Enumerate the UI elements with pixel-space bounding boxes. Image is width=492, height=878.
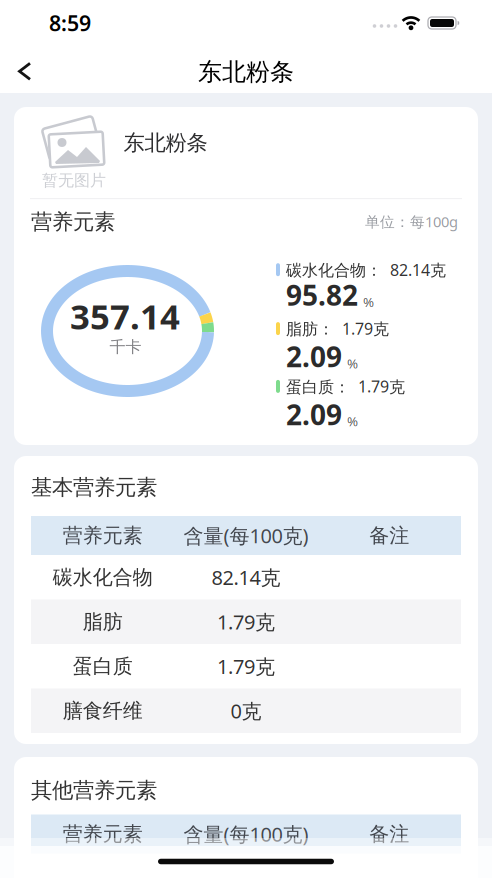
staticText: 含量(每100克)	[183, 821, 308, 847]
staticText: %	[363, 293, 374, 311]
staticText: %	[347, 354, 358, 372]
staticText: 千卡	[109, 337, 141, 357]
staticText: 82.14克	[211, 564, 280, 591]
staticText: 2.09	[286, 338, 342, 375]
staticText: 1.79克	[217, 653, 275, 680]
staticText: 单位：每100g	[365, 212, 458, 231]
staticText: 脂肪	[83, 609, 123, 634]
staticText: 357.14	[70, 293, 180, 339]
staticText: 营养元素	[63, 822, 143, 846]
button[interactable]: Back	[3, 49, 47, 93]
staticText: 蛋白质： 1.79克	[286, 376, 405, 397]
staticText: 95.82	[286, 276, 358, 314]
staticText: %	[347, 412, 358, 430]
staticText: 1.79克	[217, 608, 275, 635]
staticText: 2.09	[286, 396, 342, 433]
staticText: 备注	[369, 822, 409, 846]
staticText: 营养元素	[31, 209, 115, 235]
staticText: 含量(每100克)	[183, 522, 308, 549]
staticText: 其他营养元素	[31, 777, 157, 804]
staticText: 东北粉条	[198, 57, 294, 87]
staticText: 蛋白质	[73, 654, 133, 679]
staticText: 碳水化合物	[53, 565, 153, 590]
staticText: 基本营养元素	[31, 474, 157, 501]
staticText: 东北粉条	[123, 130, 207, 156]
staticText: 暂无图片	[42, 171, 106, 190]
staticText: 营养元素	[63, 523, 143, 548]
staticText: 备注	[369, 523, 409, 548]
staticText: 膳食纤维	[63, 698, 143, 723]
staticText: 0克	[230, 697, 261, 724]
staticText: 碳水化合物： 82.14克	[286, 259, 446, 280]
staticText: 8:59	[49, 9, 91, 37]
staticText: 脂肪： 1.79克	[286, 318, 389, 339]
